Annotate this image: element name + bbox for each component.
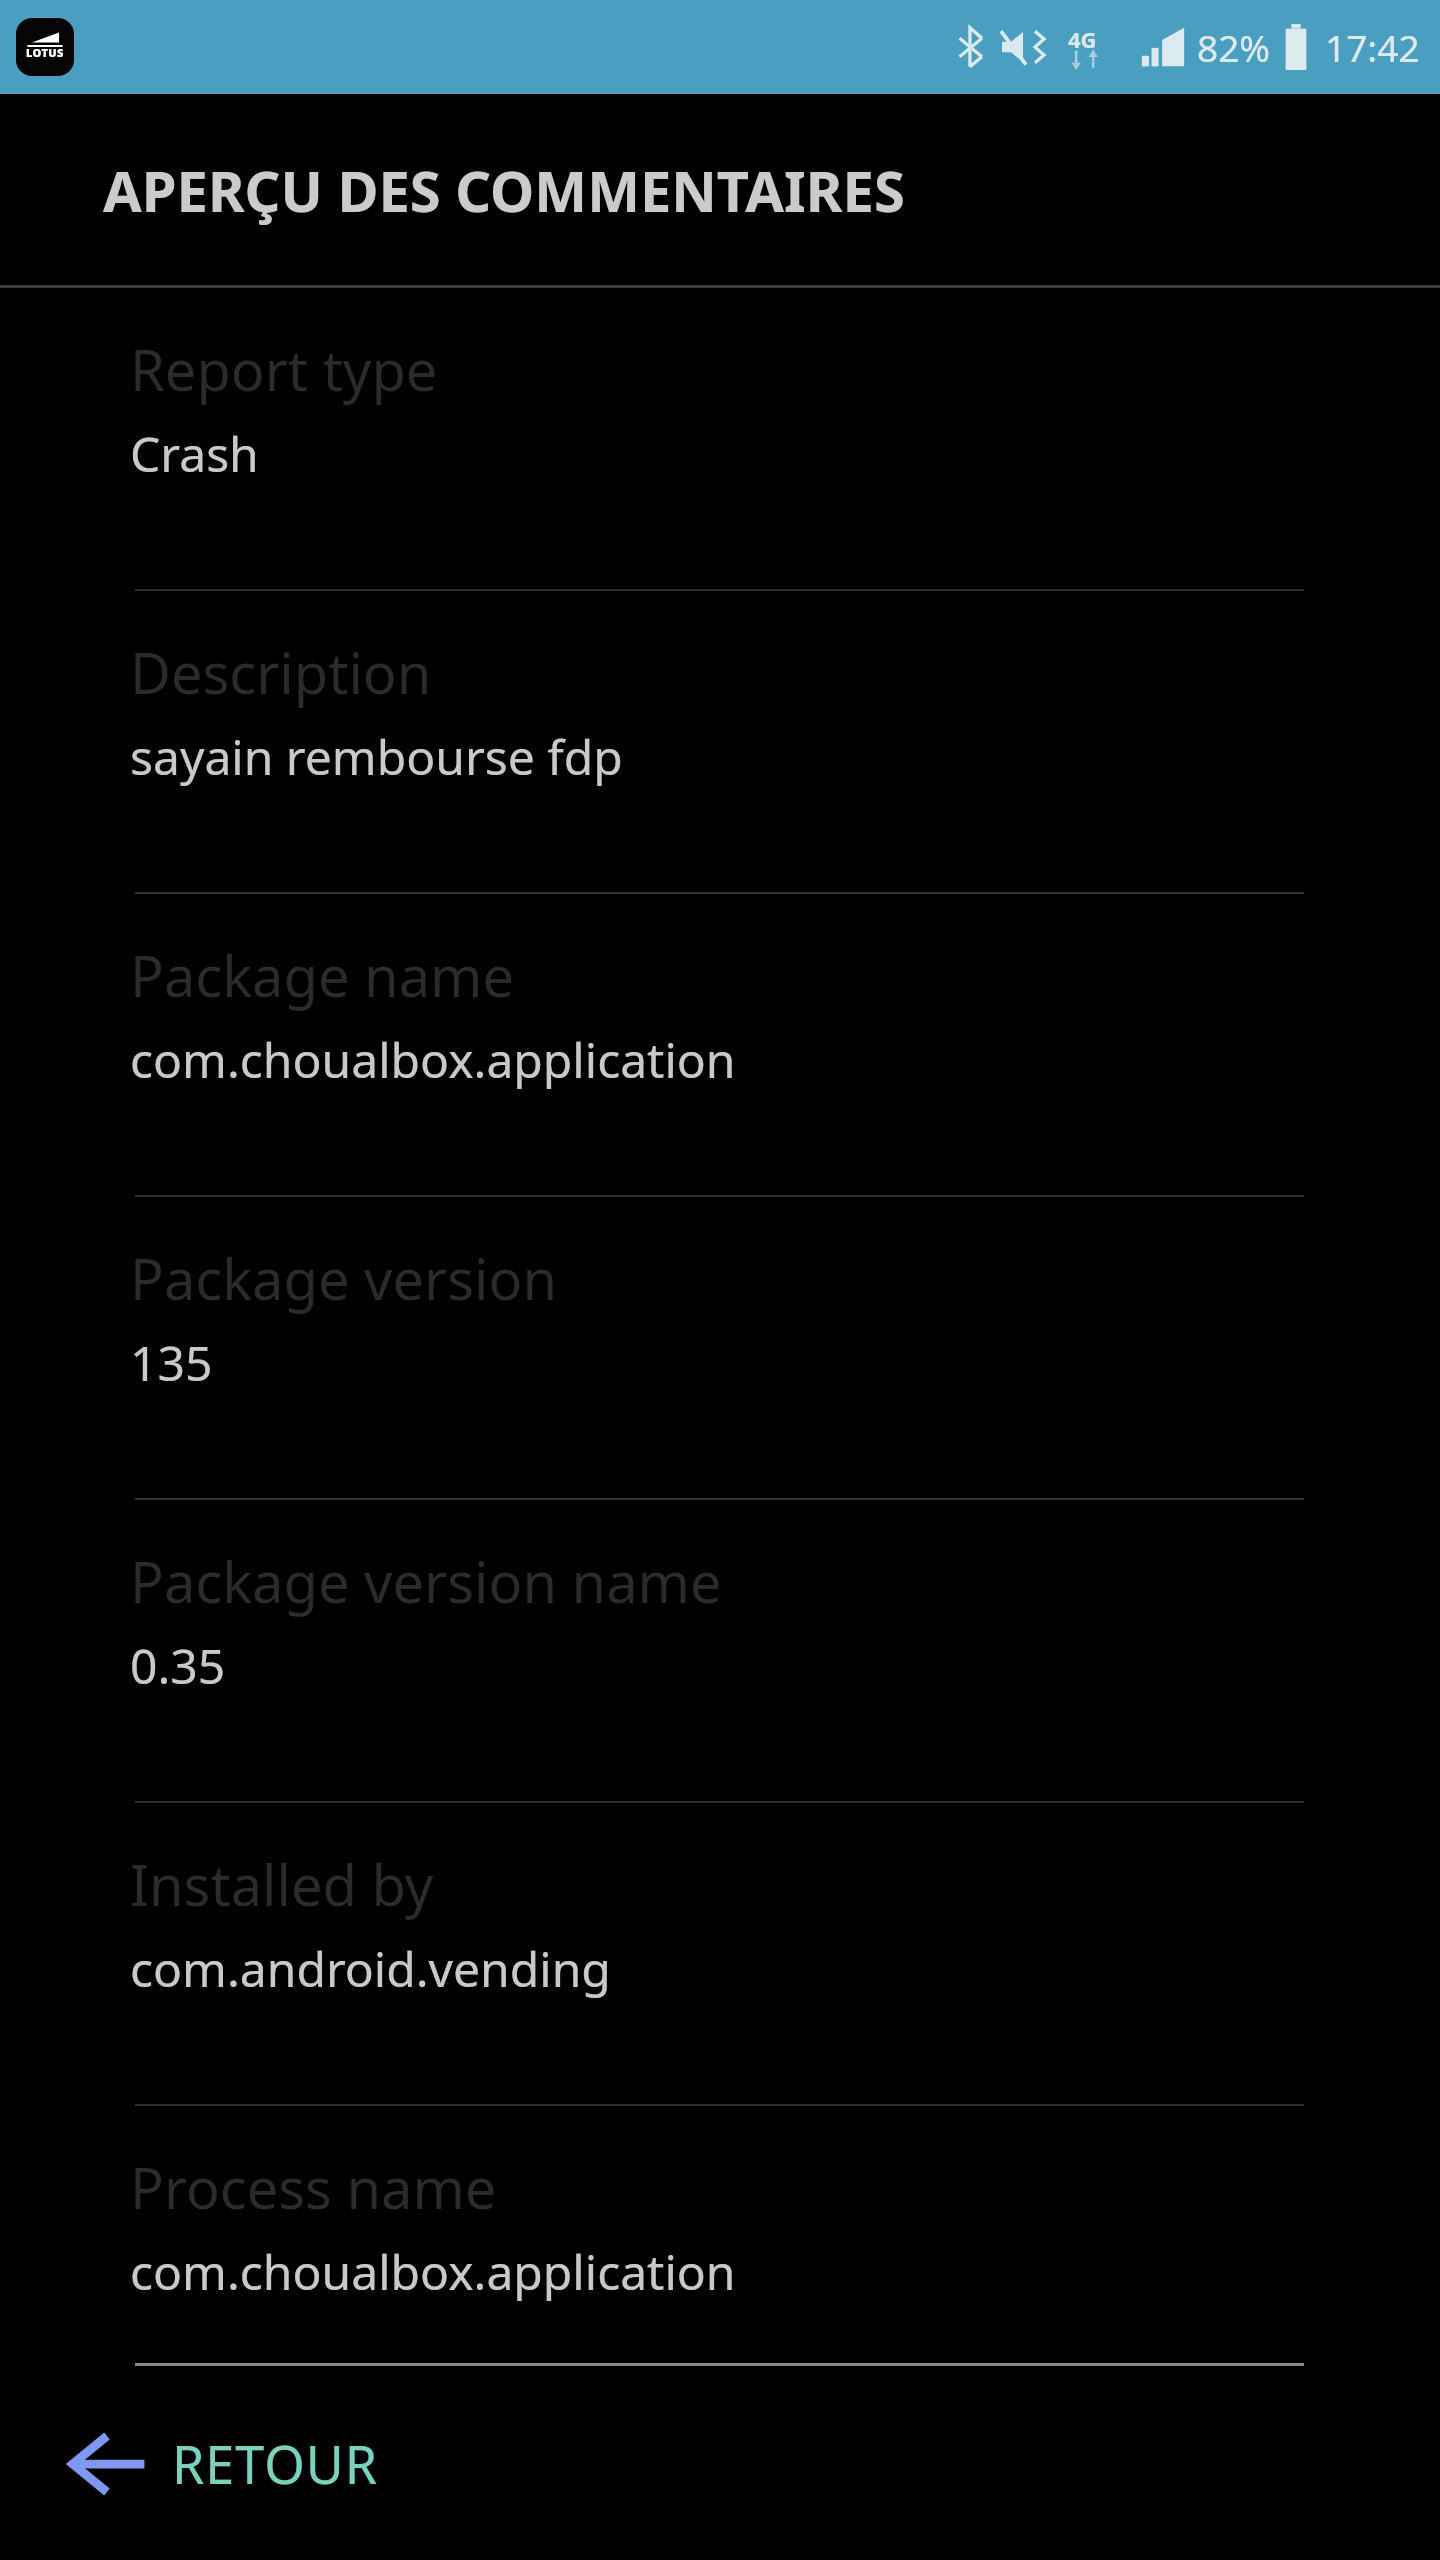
staticText: 0.35 bbox=[130, 1633, 226, 1698]
staticText: Crash bbox=[130, 421, 259, 486]
staticText: 4G bbox=[1068, 24, 1097, 54]
button[interactable]: Package version name bbox=[0, 1500, 1440, 1803]
staticText: Package name bbox=[130, 937, 515, 1013]
button[interactable]: Package name bbox=[0, 894, 1440, 1197]
staticText: sayain rembourse fdp bbox=[130, 724, 623, 789]
button[interactable]: Package version bbox=[0, 1197, 1440, 1500]
button[interactable]: Report type bbox=[0, 288, 1440, 591]
button[interactable]: Description bbox=[0, 591, 1440, 894]
button[interactable]: Retour bbox=[62, 2410, 385, 2517]
staticText: Process name bbox=[130, 2149, 497, 2225]
staticText: com.choualbox.application bbox=[130, 2239, 736, 2304]
staticText: RETOUR bbox=[172, 2428, 379, 2499]
staticText: Package version name bbox=[130, 1543, 722, 1619]
staticText: 82% bbox=[1197, 22, 1271, 72]
staticText: Report type bbox=[130, 331, 438, 407]
button[interactable]: Installed by bbox=[0, 1803, 1440, 2106]
staticText: com.choualbox.application bbox=[130, 1027, 736, 1092]
button[interactable]: Process name bbox=[0, 2106, 1440, 2366]
staticText: LOTUS bbox=[26, 45, 64, 60]
staticText: Description bbox=[130, 634, 432, 710]
staticText: 135 bbox=[130, 1330, 213, 1395]
staticText: com.android.vending bbox=[130, 1936, 611, 2001]
staticText: Installed by bbox=[130, 1846, 434, 1922]
staticText: 17:42 bbox=[1325, 22, 1420, 72]
staticText: APERÇU DES COMMENTAIRES bbox=[103, 152, 905, 228]
staticText: Package version bbox=[130, 1240, 557, 1316]
